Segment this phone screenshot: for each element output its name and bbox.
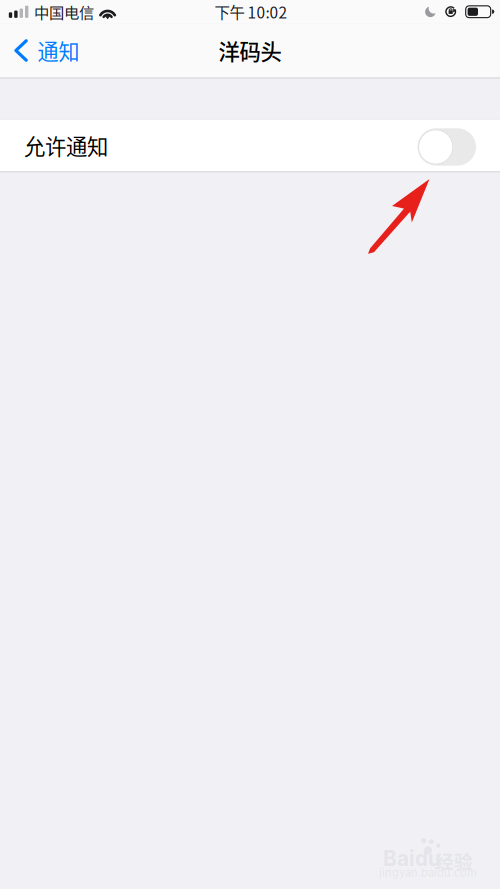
button[interactable]: 通知 [0,23,92,77]
staticText: 洋码头 [218,35,281,66]
staticText: Baidu [383,846,441,871]
staticText: 允许通知 [24,130,108,161]
staticText: 经验 [435,847,473,874]
staticText: 中国电信 [34,1,94,23]
button[interactable]: 允许通知 [0,120,500,171]
staticText: 下午 10:02 [214,1,287,23]
staticText: jingyan.baidu.com [379,866,477,879]
staticText: 通知 [38,35,80,66]
